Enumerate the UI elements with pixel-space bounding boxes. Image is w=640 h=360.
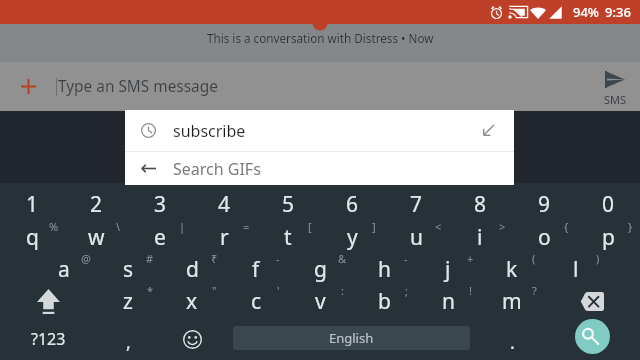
- button[interactable]: ': [224, 285, 288, 318]
- staticText: 5: [282, 190, 295, 219]
- staticText: t: [284, 223, 292, 252]
- button[interactable]: 1: [0, 183, 64, 221]
- staticText: 2: [90, 190, 103, 219]
- staticText: {: [564, 219, 569, 234]
- staticText: 8: [474, 190, 487, 219]
- staticText: <: [435, 219, 442, 234]
- button[interactable]: |: [128, 221, 192, 253]
- button[interactable]: ;: [352, 285, 416, 318]
- staticText: +: [467, 251, 474, 266]
- staticText: i: [477, 223, 483, 252]
- staticText: v: [315, 287, 326, 316]
- staticText: ₹: [211, 251, 218, 266]
- button[interactable]: ?: [480, 285, 544, 318]
- button[interactable]: -: [352, 253, 416, 285]
- staticText: d: [186, 255, 199, 284]
- staticText: subscribe: [173, 120, 246, 142]
- button[interactable]: Backspace: [544, 285, 640, 318]
- staticText: b: [378, 287, 391, 316]
- staticText: u: [410, 223, 423, 252]
- staticText: -: [404, 251, 408, 266]
- button[interactable]: 4: [192, 183, 256, 221]
- button[interactable]: @: [32, 253, 96, 285]
- button[interactable]: English: [233, 326, 470, 350]
- button[interactable]: %: [0, 221, 64, 253]
- staticText: ]: [372, 219, 376, 234]
- button[interactable]: !: [416, 285, 480, 318]
- staticText: \: [116, 219, 121, 234]
- button[interactable]: [: [256, 221, 320, 253]
- button[interactable]: &: [288, 253, 352, 285]
- button[interactable]: ?123: [0, 318, 96, 360]
- button[interactable]: 2: [64, 183, 128, 221]
- button[interactable]: -: [224, 253, 288, 285]
- staticText: 1: [26, 190, 39, 219]
- button[interactable]: Add attachment: [0, 62, 56, 111]
- staticText: English: [329, 329, 374, 347]
- button[interactable]: }: [576, 221, 640, 253]
- staticText: 4: [218, 190, 231, 219]
- button[interactable]: :: [288, 285, 352, 318]
- staticText: x: [186, 287, 198, 316]
- button[interactable]: {: [512, 221, 576, 253]
- staticText: #: [146, 251, 154, 266]
- button[interactable]: 8: [448, 183, 512, 221]
- button[interactable]: ): [544, 253, 608, 285]
- staticText: m: [502, 287, 522, 316]
- staticText: 0: [602, 190, 615, 219]
- button[interactable]: Emoji: [160, 318, 224, 360]
- button[interactable]: ": [160, 285, 224, 318]
- staticText: 6: [346, 190, 359, 219]
- button[interactable]: 0: [576, 183, 640, 221]
- staticText: |: [179, 219, 186, 234]
- button[interactable]: (: [480, 253, 544, 285]
- button[interactable]: ₹: [160, 253, 224, 285]
- button[interactable]: Search GIFs: [125, 152, 514, 185]
- staticText: !: [469, 283, 472, 298]
- staticText: 9: [538, 190, 551, 219]
- button[interactable]: ,: [96, 318, 160, 360]
- staticText: ?123: [31, 328, 66, 350]
- staticText: .: [510, 330, 515, 355]
- staticText: q: [26, 223, 39, 252]
- staticText: -: [276, 251, 280, 266]
- staticText: (: [532, 251, 536, 266]
- button[interactable]: .: [470, 318, 544, 360]
- button[interactable]: #: [96, 253, 160, 285]
- staticText: 7: [410, 190, 423, 219]
- staticText: g: [314, 255, 327, 284]
- button[interactable]: 7: [384, 183, 448, 221]
- button[interactable]: ]: [320, 221, 384, 253]
- button[interactable]: *: [96, 285, 160, 318]
- staticText: o: [538, 223, 551, 252]
- staticText: j: [445, 255, 451, 284]
- staticText: w: [88, 223, 105, 252]
- staticText: [: [308, 219, 312, 234]
- staticText: =: [243, 219, 250, 234]
- staticText: c: [251, 287, 262, 316]
- staticText: ): [596, 251, 600, 266]
- button[interactable]: \: [64, 221, 128, 253]
- button[interactable]: +: [416, 253, 480, 285]
- staticText: @: [81, 251, 91, 266]
- button[interactable]: subscribe: [125, 110, 514, 151]
- button[interactable]: 9: [512, 183, 576, 221]
- staticText: %: [49, 219, 59, 234]
- staticText: y: [347, 223, 358, 252]
- staticText: 3: [154, 190, 167, 219]
- staticText: *: [147, 283, 154, 298]
- button[interactable]: SMS: [603, 62, 627, 111]
- button[interactable]: >: [448, 221, 512, 253]
- button[interactable]: <: [384, 221, 448, 253]
- button[interactable]: 5: [256, 183, 320, 221]
- button[interactable]: 6: [320, 183, 384, 221]
- staticText: k: [506, 255, 518, 284]
- staticText: 9:36: [605, 3, 631, 21]
- staticText: SMS: [604, 92, 627, 107]
- staticText: ;: [405, 283, 408, 298]
- button[interactable]: 3: [128, 183, 192, 221]
- button[interactable]: Search: [575, 319, 610, 354]
- button[interactable]: =: [192, 221, 256, 253]
- button[interactable]: Shift: [0, 285, 96, 318]
- staticText: ,: [126, 330, 131, 355]
